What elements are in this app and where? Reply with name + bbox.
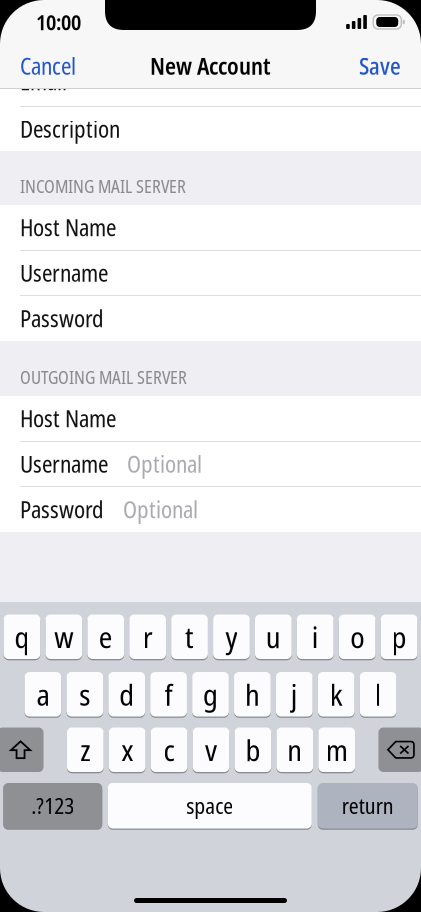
button[interactable]: r	[129, 613, 166, 660]
button[interactable]: return	[318, 782, 418, 829]
button[interactable]: h	[234, 671, 271, 717]
button[interactable]: Description	[0, 107, 421, 151]
staticText: Password	[20, 494, 104, 525]
button[interactable]: w	[45, 613, 82, 660]
staticText: v	[205, 730, 217, 770]
staticText: Email	[20, 66, 67, 97]
button[interactable]: o	[339, 613, 375, 660]
button[interactable]: Username	[0, 442, 421, 486]
staticText: q	[14, 617, 29, 657]
staticText: Optional	[123, 494, 198, 525]
button[interactable]: Cancel	[0, 44, 96, 88]
staticText: Cancel	[20, 51, 76, 81]
staticText: y	[225, 617, 237, 657]
staticText: Password	[20, 303, 104, 334]
staticText: h	[245, 674, 260, 714]
staticText: o	[350, 617, 364, 657]
staticText: c	[164, 730, 175, 770]
button[interactable]: Save	[339, 44, 421, 88]
button[interactable]: e	[87, 613, 124, 660]
staticText: k	[330, 674, 343, 714]
button[interactable]: q	[4, 613, 40, 660]
staticText: Save	[359, 51, 401, 81]
staticText: INCOMING MAIL SERVER	[20, 174, 186, 198]
button[interactable]: v	[193, 726, 229, 773]
staticText: p	[392, 617, 407, 657]
staticText: i	[312, 617, 319, 657]
button[interactable]: Host Name	[0, 205, 421, 250]
staticText: r	[143, 617, 153, 657]
staticText: .?123	[31, 791, 74, 820]
button[interactable]: Password	[0, 296, 421, 341]
staticText: s	[79, 674, 90, 714]
button[interactable]: Shift	[0, 726, 44, 773]
button[interactable]: .?123	[3, 782, 102, 829]
button[interactable]: x	[109, 726, 146, 773]
button[interactable]: k	[318, 671, 355, 717]
staticText: d	[119, 674, 134, 714]
button[interactable]: j	[276, 671, 313, 717]
staticText: 10:00	[36, 7, 81, 37]
staticText: w	[54, 617, 73, 657]
staticText: New Account	[150, 51, 271, 81]
staticText: OUTGOING MAIL SERVER	[20, 365, 187, 389]
staticText: Host Name	[20, 212, 116, 243]
button[interactable]: p	[381, 613, 417, 660]
staticText: e	[99, 617, 113, 657]
staticText: Host Name	[20, 403, 116, 434]
button[interactable]: z	[67, 726, 104, 773]
staticText: a	[36, 674, 49, 714]
button[interactable]: m	[318, 726, 355, 773]
button[interactable]: space	[108, 782, 312, 829]
button[interactable]: f	[150, 671, 187, 717]
button[interactable]: a	[25, 671, 61, 717]
staticText: z	[80, 730, 90, 770]
staticText: g	[203, 674, 218, 714]
button[interactable]: Password	[0, 487, 421, 532]
button[interactable]: Delete	[378, 726, 421, 773]
staticText: b	[245, 730, 260, 770]
staticText: l	[375, 674, 382, 714]
staticText: u	[266, 617, 281, 657]
staticText: x	[121, 730, 133, 770]
button[interactable]: b	[235, 726, 271, 773]
staticText: m	[326, 730, 348, 770]
staticText: Username	[20, 449, 108, 479]
button[interactable]: g	[192, 671, 229, 717]
button[interactable]: t	[171, 613, 208, 660]
staticText: n	[287, 730, 302, 770]
button[interactable]: Username	[0, 251, 421, 295]
button[interactable]: n	[276, 726, 313, 773]
button[interactable]: l	[360, 671, 396, 717]
staticText: Description	[20, 114, 120, 144]
button[interactable]: i	[297, 613, 334, 660]
staticText: Optional	[127, 449, 202, 479]
button[interactable]: s	[66, 671, 103, 717]
staticText: j	[291, 674, 298, 714]
button[interactable]: d	[108, 671, 145, 717]
staticText: return	[342, 791, 394, 820]
staticText: space	[186, 791, 233, 820]
button[interactable]: y	[213, 613, 250, 660]
button[interactable]: c	[151, 726, 187, 773]
button[interactable]: Host Name	[0, 396, 421, 441]
staticText: t	[185, 617, 194, 657]
staticText: Username	[20, 258, 108, 288]
button[interactable]: u	[255, 613, 292, 660]
staticText: f	[165, 674, 173, 714]
